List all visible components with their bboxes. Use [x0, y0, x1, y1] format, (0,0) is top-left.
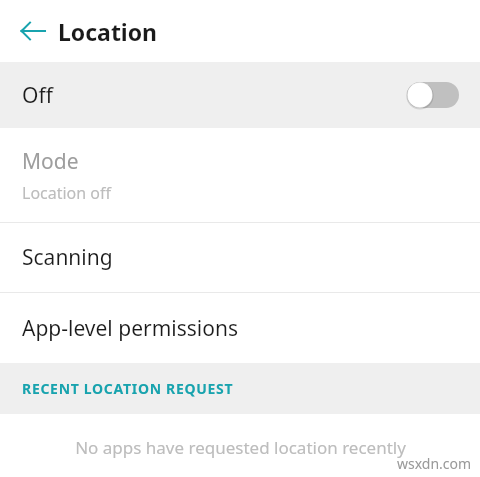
staticText: wsxdn.com — [397, 454, 472, 473]
button[interactable]: App-level permissions — [0, 293, 480, 363]
staticText: Scanning — [22, 243, 113, 272]
button[interactable]: Off — [0, 62, 480, 128]
button[interactable]: Location off toggle — [407, 78, 459, 112]
button[interactable]: Scanning — [0, 223, 480, 292]
button[interactable]: Mode — [0, 128, 480, 222]
staticText: Mode — [22, 147, 79, 176]
staticText: RECENT LOCATION REQUEST — [22, 379, 234, 398]
staticText: Off — [22, 81, 53, 110]
staticText: App-level permissions — [22, 314, 239, 343]
staticText: Location — [58, 16, 158, 47]
staticText: No apps have requested location recently — [75, 436, 406, 459]
staticText: Location off — [22, 182, 112, 204]
button[interactable]: Back — [11, 9, 55, 53]
